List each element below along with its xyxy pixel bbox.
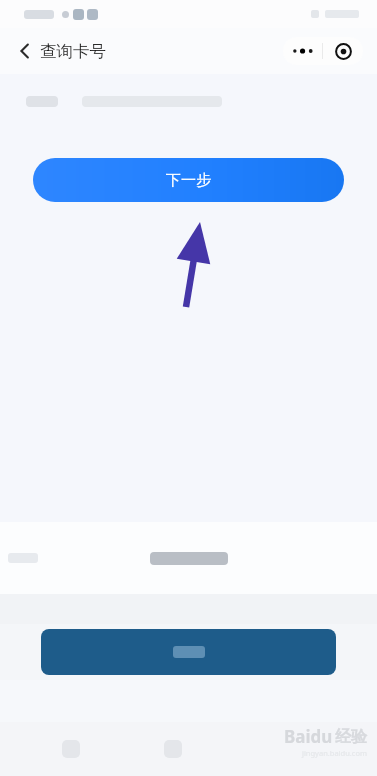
- staticText: jingyan.baidu.com: [302, 748, 367, 758]
- staticText: 查询卡号: [40, 41, 106, 62]
- button[interactable]: [41, 629, 336, 675]
- button[interactable]: Tab two: [164, 740, 182, 758]
- staticText: Baidu: [284, 725, 333, 748]
- button[interactable]: Tab one: [62, 740, 80, 758]
- button[interactable]: More: [283, 47, 322, 55]
- button[interactable]: 下一步: [33, 158, 344, 202]
- staticText: 经验: [335, 727, 367, 747]
- staticText: 下一步: [166, 171, 211, 190]
- button[interactable]: Close: [323, 43, 363, 60]
- button[interactable]: Back: [8, 34, 42, 68]
